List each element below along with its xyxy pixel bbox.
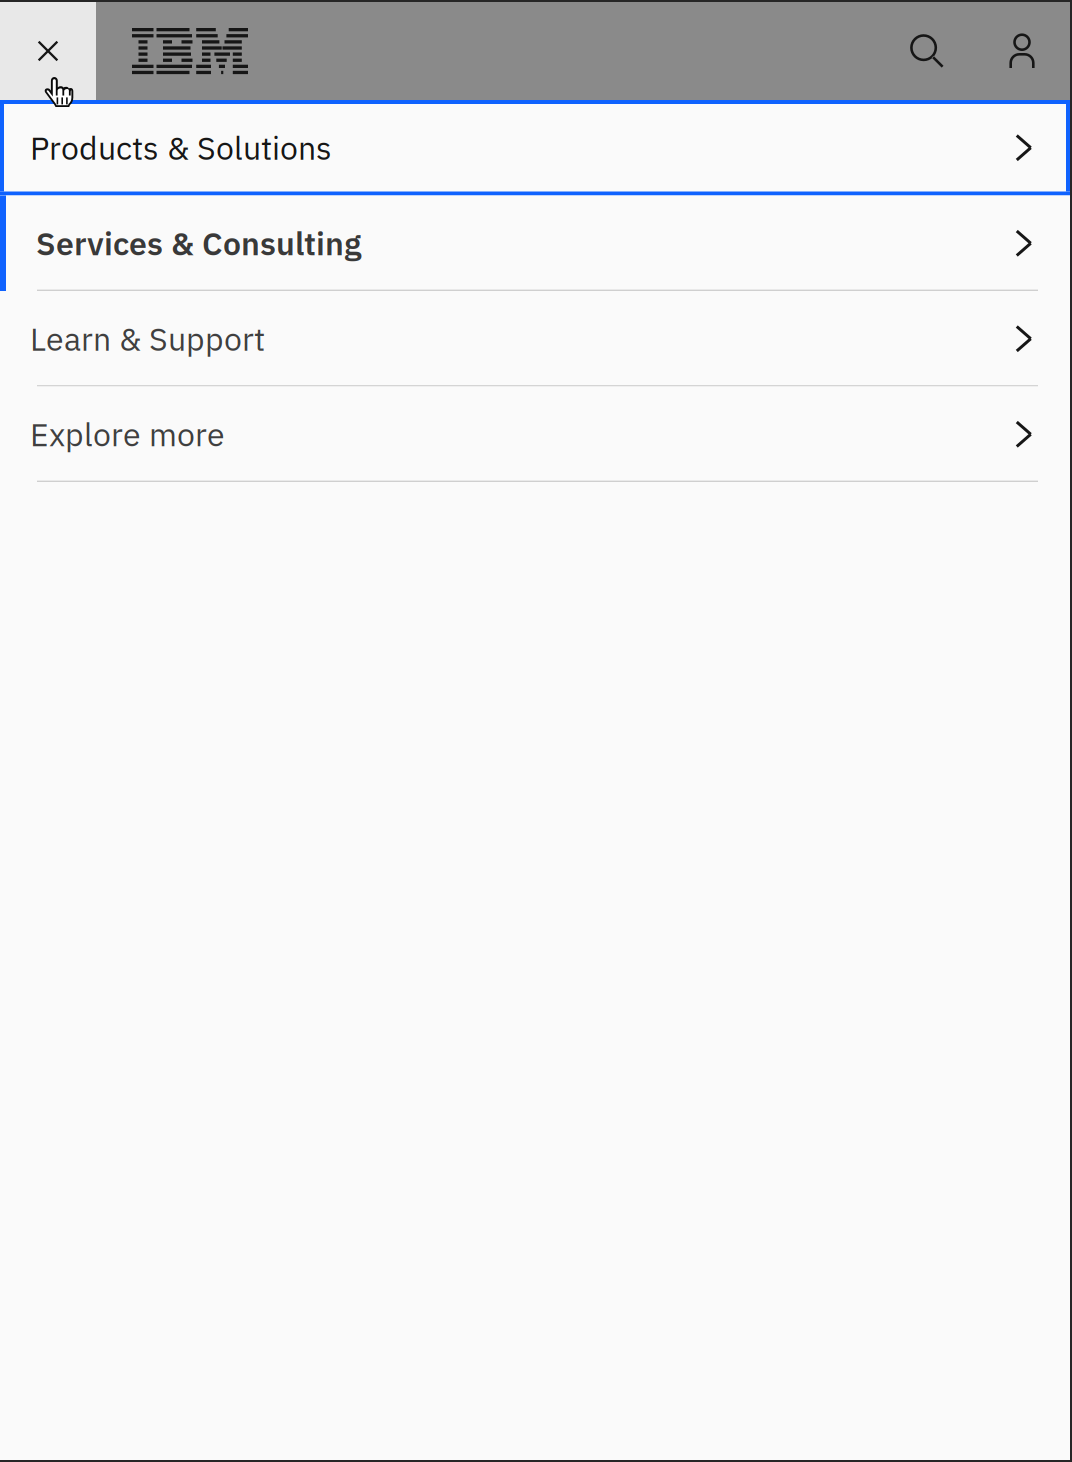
button[interactable]: Learn & Support bbox=[0, 291, 1070, 386]
staticText: Products & Solutions bbox=[30, 127, 332, 169]
staticText: Services & Consulting bbox=[36, 222, 361, 264]
button[interactable]: Account bbox=[974, 2, 1070, 100]
button[interactable]: Services & Consulting bbox=[0, 195, 1070, 291]
button[interactable]: IBM home bbox=[96, 2, 264, 100]
staticText: Learn & Support bbox=[30, 318, 265, 360]
button[interactable]: Products & Solutions bbox=[0, 100, 1070, 195]
button[interactable]: Explore more bbox=[0, 386, 1070, 482]
staticText: Explore more bbox=[30, 413, 225, 455]
button[interactable]: Close menu bbox=[0, 2, 96, 100]
button[interactable]: Search bbox=[880, 2, 974, 100]
